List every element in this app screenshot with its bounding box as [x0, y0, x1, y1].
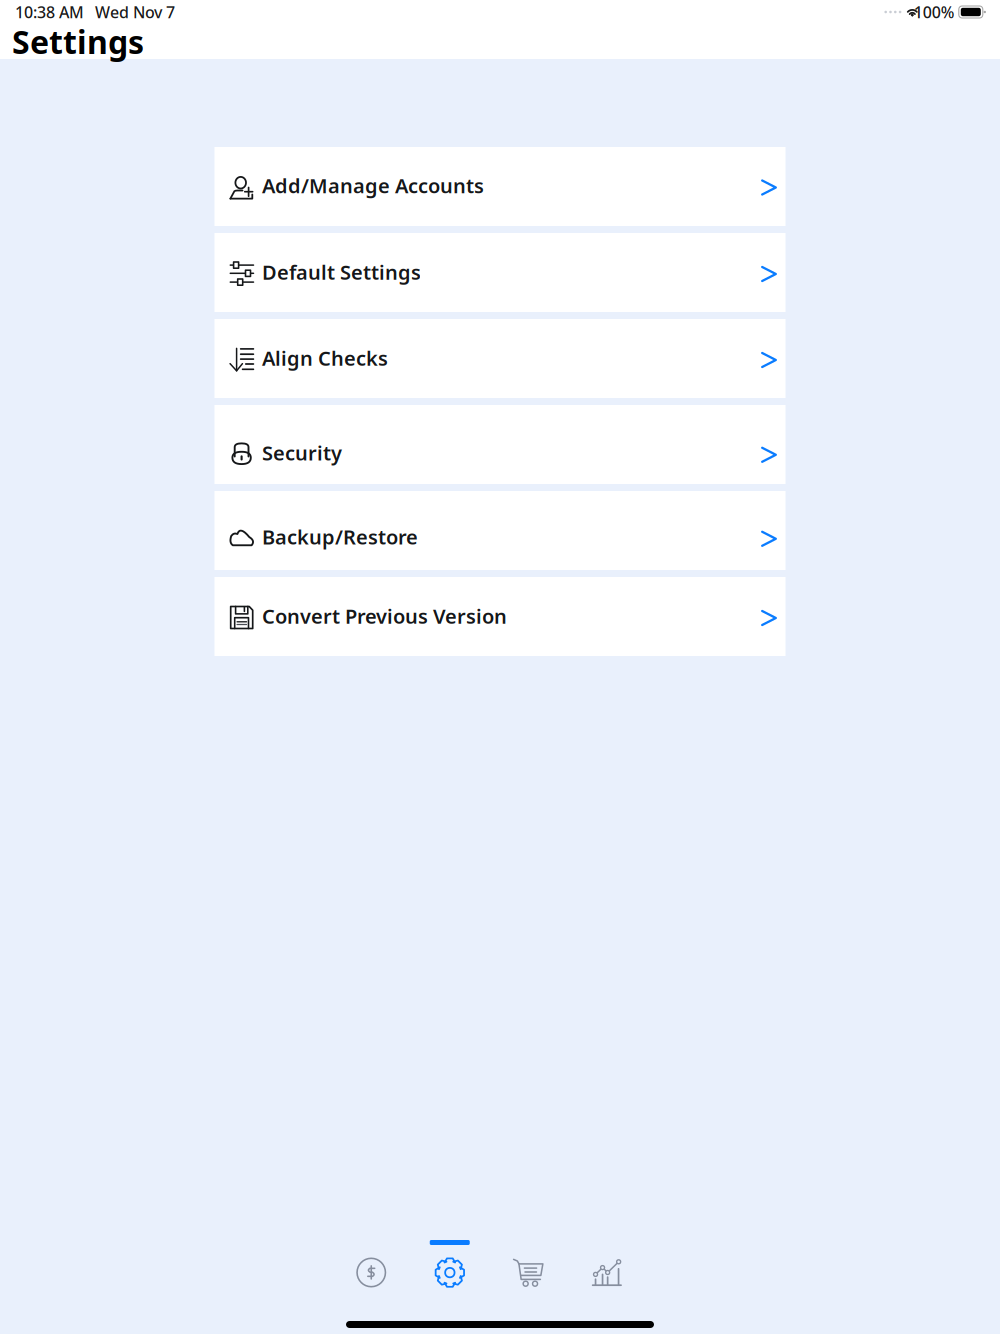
- staticText: Default Settings: [262, 259, 421, 285]
- button[interactable]: Reports: [567, 1240, 646, 1297]
- button[interactable]: Add/Manage Accounts: [214, 147, 785, 226]
- staticText: Security: [262, 439, 342, 466]
- button[interactable]: Convert Previous Version: [214, 577, 785, 656]
- staticText: Backup/Restore: [262, 523, 418, 550]
- button[interactable]: Orders: [489, 1240, 567, 1297]
- staticText: Convert Previous Version: [262, 603, 507, 629]
- button[interactable]: Align Checks: [214, 319, 785, 398]
- staticText: 100%: [914, 1, 955, 23]
- button[interactable]: Default Settings: [214, 233, 785, 312]
- button[interactable]: Payments: [332, 1240, 410, 1297]
- staticText: Wed Nov 7: [95, 1, 175, 23]
- staticText: Align Checks: [262, 345, 388, 371]
- staticText: 10:38 AM: [15, 1, 84, 23]
- button[interactable]: Backup/Restore: [214, 491, 785, 570]
- staticText: Settings: [12, 20, 144, 63]
- staticText: Add/Manage Accounts: [262, 172, 484, 199]
- button[interactable]: Security: [214, 405, 785, 484]
- button[interactable]: Settings: [410, 1240, 489, 1297]
